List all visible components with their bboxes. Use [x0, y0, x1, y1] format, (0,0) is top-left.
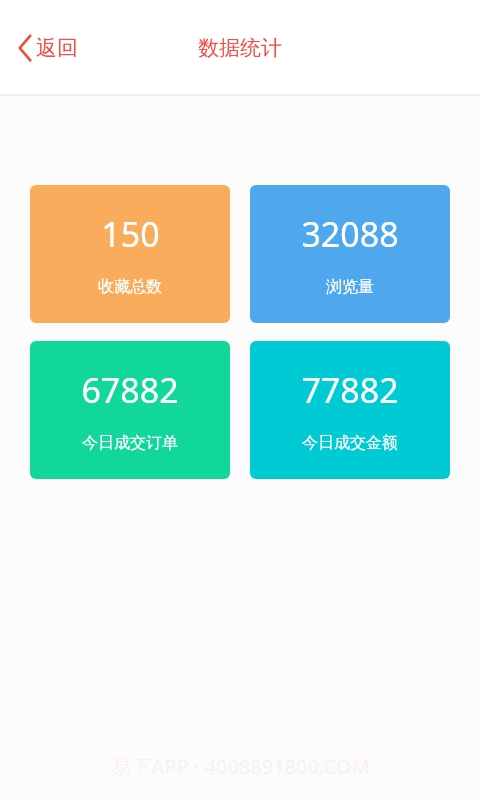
staticText: 浏览量: [326, 277, 374, 297]
staticText: 77882: [301, 367, 399, 413]
staticText: 返回: [36, 35, 78, 61]
staticText: 收藏总数: [98, 277, 162, 297]
button[interactable]: 77882: [250, 341, 450, 479]
button[interactable]: 32088: [250, 185, 450, 323]
staticText: 今日成交金额: [302, 433, 398, 453]
button[interactable]: 返回: [12, 26, 84, 70]
button[interactable]: 67882: [30, 341, 230, 479]
staticText: 67882: [81, 367, 179, 413]
staticText: 今日成交订单: [82, 433, 178, 453]
button[interactable]: 150: [30, 185, 230, 323]
staticText: 32088: [301, 211, 399, 257]
staticText: 数据统计: [198, 35, 282, 61]
staticText: 易下APP · 4008891800.COM: [111, 753, 370, 780]
staticText: 150: [101, 211, 160, 257]
